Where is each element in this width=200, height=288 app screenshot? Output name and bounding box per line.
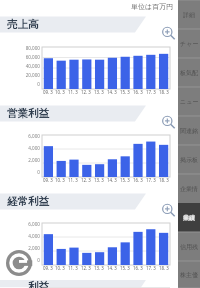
staticText: 12. 3 xyxy=(81,177,91,183)
staticText: 4,000 xyxy=(28,233,40,239)
staticText: 14. 3 xyxy=(107,89,117,95)
staticText: 売上高 xyxy=(7,18,39,31)
staticText: 経常利益 xyxy=(7,195,49,208)
staticText: 0 xyxy=(37,257,40,263)
staticText: 20,000 xyxy=(25,72,40,78)
button[interactable]: 拡大 xyxy=(161,26,175,40)
staticText: 0 xyxy=(37,81,40,87)
staticText: 13. 3 xyxy=(94,177,104,183)
staticText: 11. 3 xyxy=(68,177,78,183)
staticText: 16. 3 xyxy=(133,89,143,95)
staticText: 関連銘 xyxy=(180,127,198,135)
staticText: 09. 3 xyxy=(43,89,53,95)
staticText: 09. 3 xyxy=(43,265,53,271)
staticText: 15. 3 xyxy=(120,89,130,95)
button[interactable]: 拡大 xyxy=(161,203,175,217)
staticText: 2,000 xyxy=(28,245,40,251)
staticText: 14. 3 xyxy=(107,265,117,271)
staticText: 掲示板 xyxy=(180,156,198,164)
staticText: 12. 3 xyxy=(81,89,91,95)
staticText: 信用残 xyxy=(180,243,198,251)
button[interactable]: 詳細 xyxy=(178,0,200,29)
staticText: 13. 3 xyxy=(94,89,104,95)
staticText: 13. 3 xyxy=(94,265,104,271)
button[interactable]: 関連銘 xyxy=(178,116,200,145)
button[interactable]: 板気配 xyxy=(178,58,200,87)
button[interactable]: 掲示板 xyxy=(178,145,200,174)
button[interactable]: 業績 xyxy=(178,203,200,232)
staticText: ニュー xyxy=(180,98,199,106)
staticText: 株主優 xyxy=(180,271,198,279)
button[interactable]: 拡大 xyxy=(161,115,175,129)
staticText: 板気配 xyxy=(180,69,198,77)
button[interactable]: ニュー xyxy=(178,87,200,116)
staticText: 詳細 xyxy=(183,11,195,19)
staticText: 80,000 xyxy=(25,45,40,51)
staticText: 6,000 xyxy=(28,221,40,227)
staticText: 40,000 xyxy=(25,63,40,69)
staticText: 60,000 xyxy=(25,54,40,60)
staticText: 18. 3 xyxy=(159,265,169,271)
staticText: 15. 3 xyxy=(120,265,130,271)
staticText: 11. 3 xyxy=(68,265,78,271)
staticText: 営業利益 xyxy=(7,107,49,120)
button[interactable]: 信用残 xyxy=(178,232,200,261)
staticText: チャー xyxy=(180,40,199,48)
staticText: 12. 3 xyxy=(81,265,91,271)
staticText: 業績 xyxy=(183,214,195,222)
staticText: 6,000 xyxy=(28,133,40,139)
staticText: 09. 3 xyxy=(43,177,53,183)
staticText: 16. 3 xyxy=(133,177,143,183)
staticText: 10. 3 xyxy=(55,89,65,95)
staticText: 17. 3 xyxy=(146,89,156,95)
staticText: 18. 3 xyxy=(159,89,169,95)
staticText: 15. 3 xyxy=(120,177,130,183)
staticText: 14. 3 xyxy=(107,177,117,183)
button[interactable]: 企業情 xyxy=(178,174,200,203)
staticText: 4,000 xyxy=(28,145,40,151)
staticText: 16. 3 xyxy=(133,265,143,271)
staticText: 17. 3 xyxy=(146,177,156,183)
staticText: 単位は百万円 xyxy=(131,2,174,11)
staticText: 2,000 xyxy=(28,157,40,163)
staticText: 11. 3 xyxy=(68,89,78,95)
staticText: 17. 3 xyxy=(146,265,156,271)
staticText: 10. 3 xyxy=(55,177,65,183)
staticText: 10. 3 xyxy=(55,265,65,271)
button[interactable]: 株主優 xyxy=(178,261,200,288)
staticText: 18. 3 xyxy=(159,177,169,183)
button[interactable]: チャー xyxy=(178,29,200,58)
staticText: 企業情 xyxy=(180,185,198,193)
staticText: 利益 xyxy=(7,279,49,288)
staticText: 0 xyxy=(37,169,40,175)
